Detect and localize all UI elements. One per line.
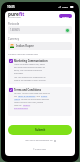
staticText: your health partner xyxy=(8,17,21,19)
staticText: email, SMS and other electronic xyxy=(14,69,43,72)
staticText: Terms & Conditions xyxy=(18,95,36,98)
staticText: read our xyxy=(14,104,23,107)
staticText: I want to receive fitness tips, offers xyxy=(14,63,45,66)
staticText: Currency xyxy=(8,37,19,41)
staticText: Indian Rupee xyxy=(16,44,34,48)
staticText: Postcode xyxy=(8,22,20,26)
staticText: 10:35 xyxy=(7,5,15,9)
staticText: You can update your preferences at xyxy=(14,76,46,79)
staticText: . To find out more about how we xyxy=(20,98,49,101)
staticText: collect and use your data, please xyxy=(14,101,43,104)
staticText: Privacy xyxy=(41,95,48,98)
staticText: messages. xyxy=(14,72,24,75)
staticText: Documentation xyxy=(14,107,28,110)
staticText: Support xyxy=(23,104,31,107)
staticText: 100% xyxy=(62,5,69,8)
staticText: the xyxy=(14,95,18,98)
staticText: Currency cannot be changed later xyxy=(8,53,39,56)
staticText: Your data is encrypted with SSL xyxy=(25,139,53,142)
button[interactable]: Terms and Conditions xyxy=(8,87,72,116)
staticText: Marketing Communication xyxy=(14,59,48,62)
staticText: fit xyxy=(19,11,25,17)
staticText: and other personalised content via xyxy=(14,66,45,69)
staticText: Terms and Conditions xyxy=(14,88,41,91)
staticText: I'm over 18 and I have read and agree to xyxy=(14,92,50,95)
staticText: Submit xyxy=(35,128,46,132)
staticText: pure xyxy=(8,11,19,17)
staticText: time in the settings of your account. xyxy=(14,79,46,82)
button[interactable]: Marketing Communication xyxy=(8,58,72,84)
button[interactable]: Submit xyxy=(8,125,72,135)
staticText: and xyxy=(36,95,41,98)
button[interactable]: 140605 xyxy=(8,26,72,34)
staticText: 140605 xyxy=(10,28,20,32)
staticText: Login xyxy=(62,15,69,18)
button[interactable]: Login xyxy=(59,14,72,18)
staticText: Notice xyxy=(14,98,20,101)
staticText: © PureFit 2024 xyxy=(33,148,47,151)
button[interactable]: Indian Rupee xyxy=(8,42,72,50)
